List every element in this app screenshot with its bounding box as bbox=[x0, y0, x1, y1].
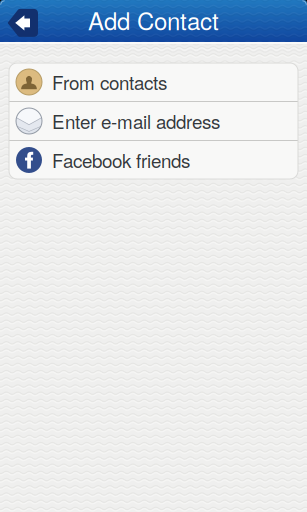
button[interactable]: From contacts bbox=[9, 63, 298, 101]
staticText: Facebook friends bbox=[52, 146, 190, 173]
button[interactable]: Back bbox=[0, 4, 39, 37]
staticText: Add Contact bbox=[88, 3, 219, 37]
button[interactable]: Enter e-mail address bbox=[9, 102, 298, 140]
staticText: Enter e-mail address bbox=[52, 107, 220, 134]
button[interactable]: Facebook friends bbox=[9, 141, 298, 179]
staticText: From contacts bbox=[52, 68, 167, 95]
